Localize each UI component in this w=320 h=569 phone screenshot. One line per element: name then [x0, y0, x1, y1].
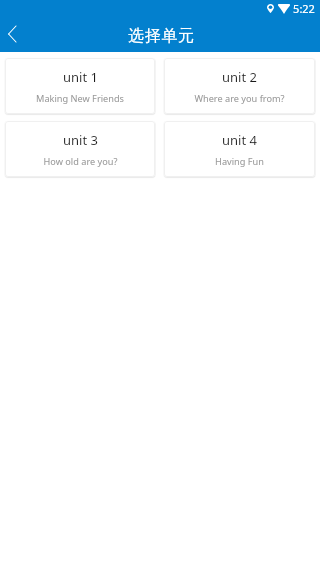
- staticText: unit 3: [63, 131, 98, 149]
- button[interactable]: unit 2: [164, 58, 315, 114]
- staticText: unit 4: [222, 131, 257, 149]
- staticText: 选择单元: [128, 26, 195, 46]
- staticText: How old are you?: [43, 155, 118, 168]
- button[interactable]: unit 3: [5, 121, 155, 177]
- staticText: Making New Friends: [36, 92, 124, 105]
- button[interactable]: Back: [0, 17, 30, 52]
- staticText: Having Fun: [215, 155, 264, 168]
- staticText: unit 1: [63, 68, 98, 86]
- button[interactable]: unit 1: [5, 58, 155, 114]
- staticText: unit 2: [222, 68, 257, 86]
- button[interactable]: unit 4: [164, 121, 315, 177]
- staticText: 5:22: [293, 1, 315, 16]
- staticText: Where are you from?: [194, 92, 285, 105]
